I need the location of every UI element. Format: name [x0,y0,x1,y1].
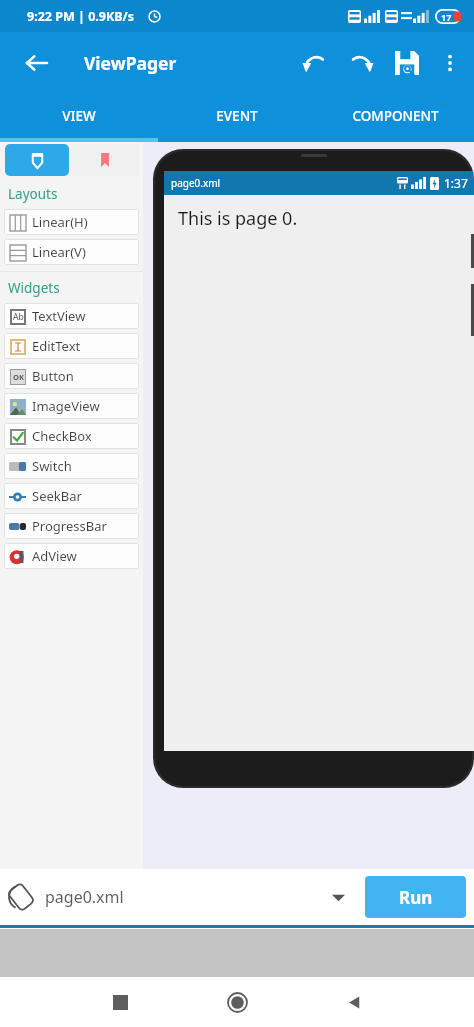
staticText: Run [399,886,433,909]
button[interactable]: Select page [321,880,355,914]
button[interactable]: Ab [4,303,139,329]
button[interactable]: Undo [292,40,338,86]
staticText: COMPONENT [352,107,439,125]
staticText: CheckBox [32,427,92,445]
button[interactable]: Views palette [5,144,69,176]
button[interactable]: Save [384,40,430,86]
staticText: EditText [32,337,81,355]
staticText: 9:22 PM | 0.9KB/s [27,8,135,25]
button[interactable]: Redo [338,40,384,86]
button[interactable]: ImageView [4,393,139,419]
staticText: Layouts [8,185,58,203]
button[interactable]: SeekBar [4,483,139,509]
staticText: Widgets [8,279,60,297]
staticText: EVENT [216,107,258,125]
button[interactable]: VIEW [0,94,158,138]
button[interactable]: COMPONENT [316,94,474,138]
staticText: ViewPager [84,51,177,75]
staticText: Switch [32,457,72,475]
button[interactable]: CheckBox [4,423,139,449]
button[interactable]: EVENT [158,94,316,138]
button[interactable]: Back [14,41,58,85]
staticText: 1:37 [444,175,468,191]
staticText: AdView [32,547,77,565]
button[interactable]: Linear(V) [4,239,139,265]
staticText: TextView [32,307,86,325]
staticText: This is page 0. [178,206,298,231]
button[interactable]: Switch [4,453,139,479]
button[interactable]: page0.xml [8,869,321,925]
staticText: Linear(V) [32,243,86,261]
button[interactable]: Favorites [71,144,139,176]
staticText: Linear(H) [32,213,88,231]
staticText: page0.xml [171,176,221,190]
staticText: Button [32,367,74,385]
staticText: VIEW [62,107,96,125]
staticText: ImageView [32,397,100,415]
staticText: OK [13,372,24,382]
staticText: Ab [13,311,24,323]
staticText: SeekBar [32,487,82,505]
button[interactable]: Recent apps [98,980,142,1024]
staticText: page0.xml [45,886,124,908]
staticText: 17 [441,11,452,23]
button[interactable]: OK [4,363,139,389]
button[interactable]: Run [365,876,466,918]
staticText: ProgressBar [32,517,107,535]
button[interactable]: ProgressBar [4,513,139,539]
button[interactable]: EditText [4,333,139,359]
button[interactable]: More options [430,43,470,83]
button[interactable]: Back [332,980,376,1024]
button[interactable]: Linear(H) [4,209,139,235]
button[interactable]: Home [215,980,259,1024]
button[interactable]: AdView [4,543,139,569]
